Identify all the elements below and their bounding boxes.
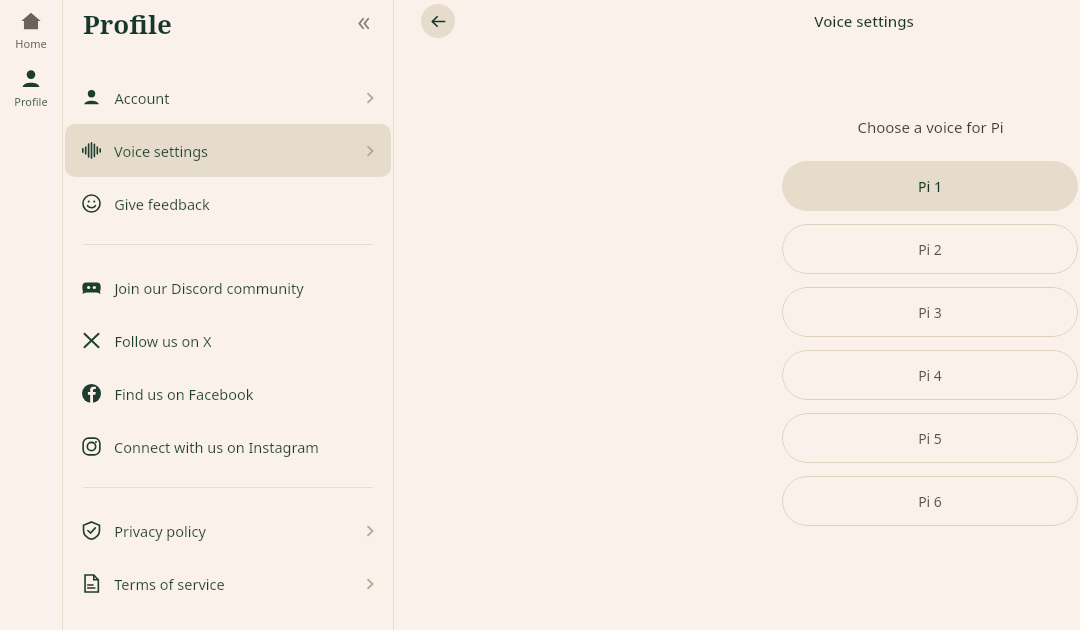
staticText: Choose a voice for Pi	[857, 117, 1004, 137]
button[interactable]: Terms of service	[65, 557, 391, 610]
staticText: Pi 1	[918, 177, 942, 196]
staticText: Account	[114, 88, 170, 108]
button[interactable]: Profile	[0, 64, 62, 113]
staticText: Profile	[83, 6, 172, 41]
staticText: Voice settings	[814, 11, 914, 31]
staticText: Pi 4	[918, 366, 942, 385]
button[interactable]: Account	[65, 71, 391, 124]
button[interactable]: Join our Discord community	[65, 261, 391, 314]
button[interactable]: Back	[421, 4, 455, 38]
button[interactable]: Voice settings	[65, 124, 391, 177]
staticText: Home	[15, 36, 47, 51]
staticText: Connect with us on Instagram	[114, 437, 319, 457]
button[interactable]: Collapse sidebar	[349, 8, 379, 38]
button[interactable]: Pi 6	[782, 476, 1078, 526]
staticText: Pi 6	[918, 492, 942, 511]
button[interactable]: Pi 1	[782, 161, 1078, 211]
button[interactable]: Find us on Facebook	[65, 367, 391, 420]
button[interactable]: Pi 5	[782, 413, 1078, 463]
staticText: Privacy policy	[114, 521, 206, 541]
staticText: Find us on Facebook	[114, 384, 254, 404]
button[interactable]: Follow us on X	[65, 314, 391, 367]
staticText: Pi 5	[918, 429, 942, 448]
button[interactable]: Home	[0, 6, 62, 55]
staticText: Profile	[14, 94, 48, 109]
staticText: Pi 2	[918, 240, 942, 259]
button[interactable]: Pi 2	[782, 224, 1078, 274]
staticText: Follow us on X	[114, 331, 212, 351]
button[interactable]: Connect with us on Instagram	[65, 420, 391, 473]
button[interactable]: Pi 3	[782, 287, 1078, 337]
staticText: Terms of service	[114, 574, 225, 594]
staticText: Voice settings	[114, 141, 208, 161]
staticText: Give feedback	[114, 194, 210, 214]
button[interactable]: Give feedback	[65, 177, 391, 230]
staticText: Join our Discord community	[114, 278, 304, 298]
button[interactable]: Pi 4	[782, 350, 1078, 400]
button[interactable]: Privacy policy	[65, 504, 391, 557]
staticText: Pi 3	[918, 303, 942, 322]
